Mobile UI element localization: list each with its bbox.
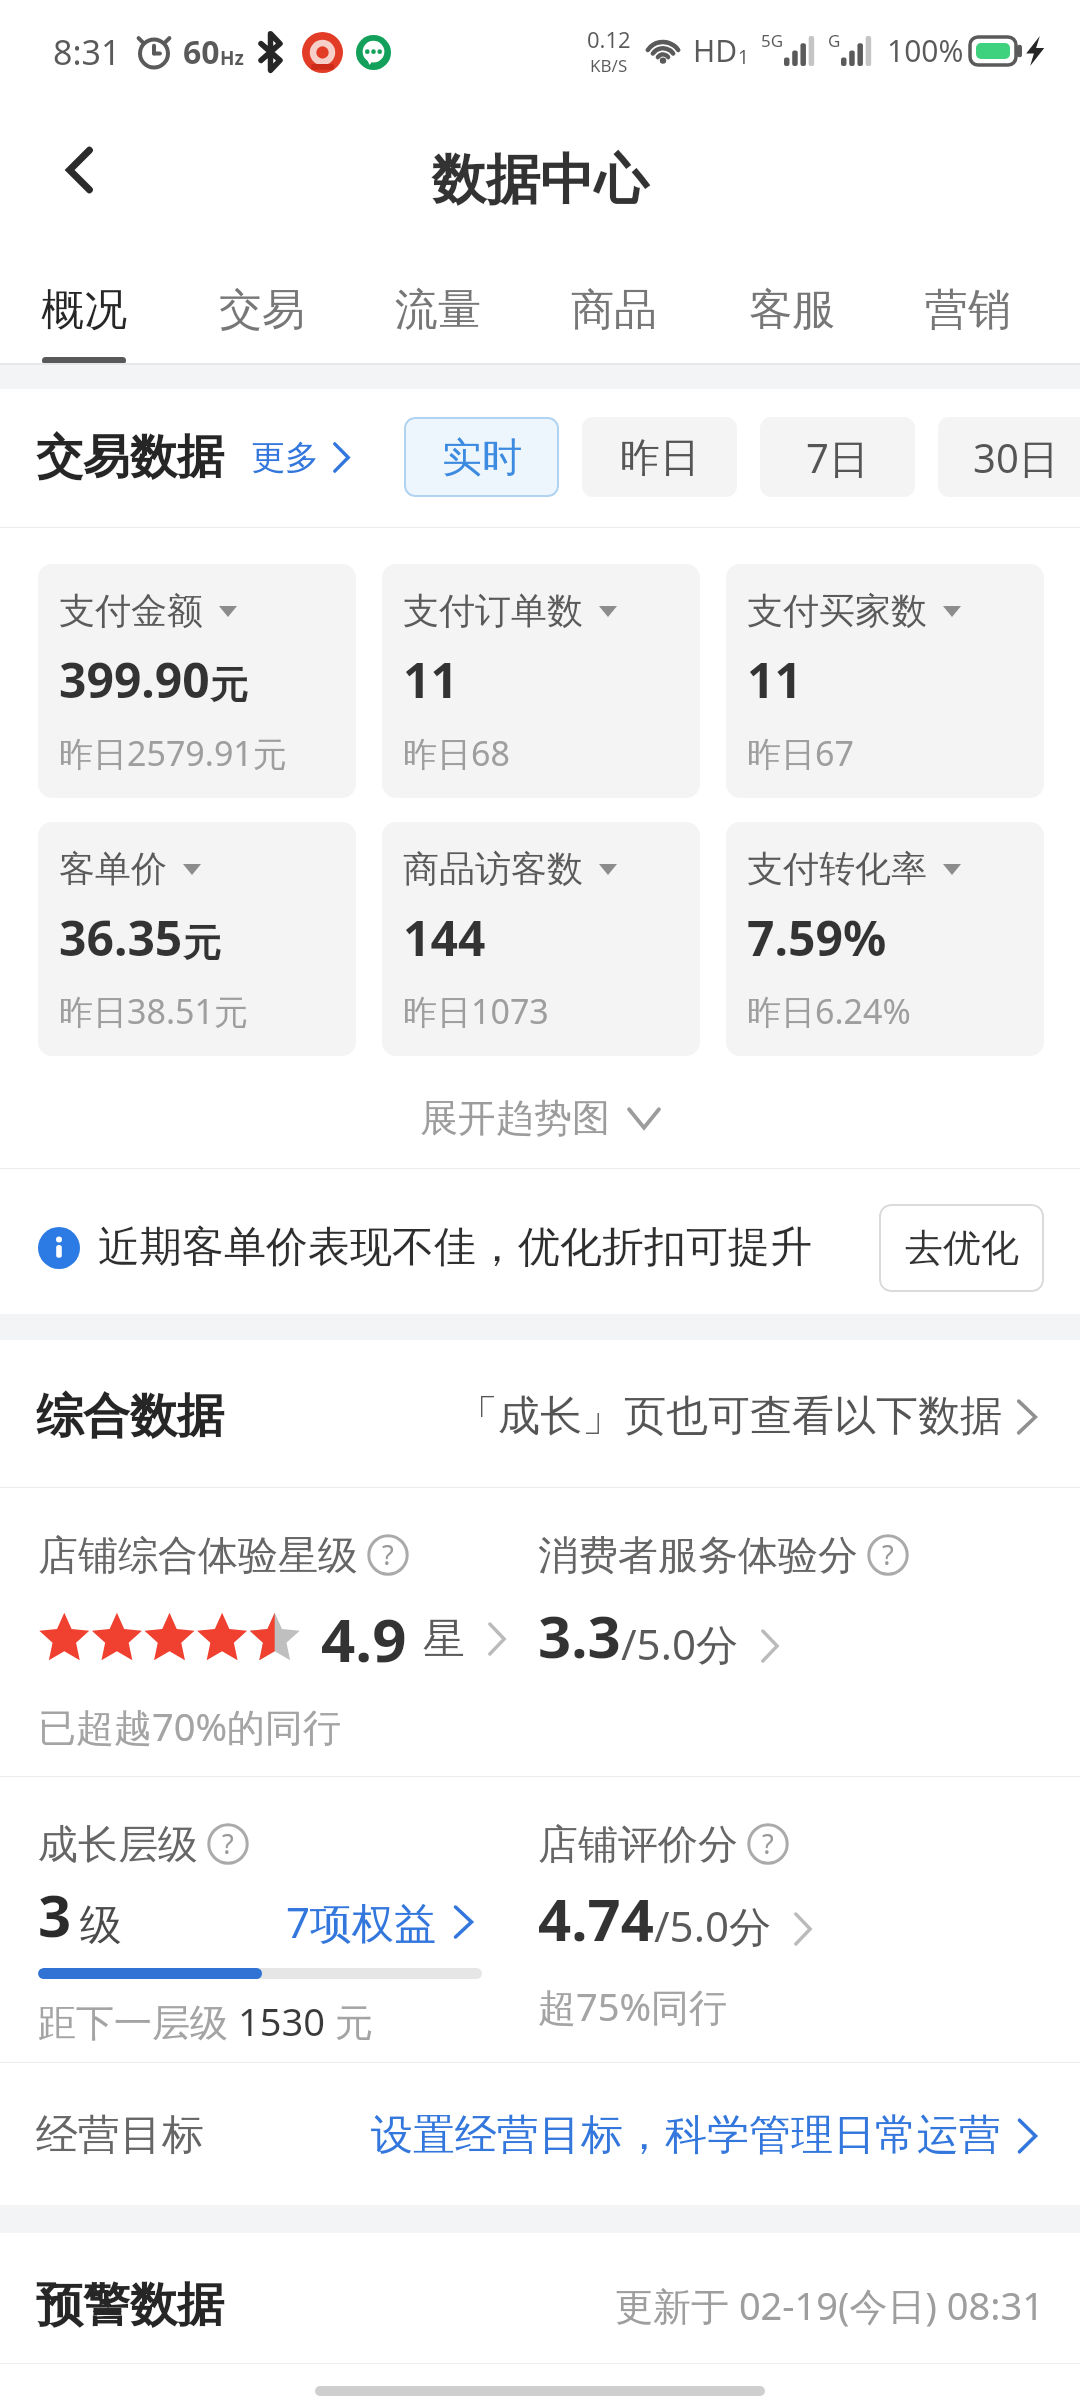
staticText: 星 <box>423 1613 465 1666</box>
staticText: 设置经营目标，科学管理日常运营 <box>371 2109 1001 2162</box>
button[interactable]: 4.74 <box>538 1879 815 1958</box>
staticText: 元 <box>325 1995 373 2047</box>
staticText: 店铺综合体验星级 <box>38 1530 358 1580</box>
staticText: 概况 <box>41 283 127 337</box>
button[interactable]: 昨日 <box>582 417 737 497</box>
staticText: 支付订单数 <box>403 588 583 633</box>
staticText: 1 <box>738 44 749 70</box>
staticText: 级 <box>80 1899 122 1952</box>
staticText: ? <box>882 1536 894 1573</box>
staticText: 经营目标 <box>36 2109 204 2162</box>
button[interactable]: 去优化 <box>879 1204 1044 1292</box>
button[interactable]: 客单价 <box>38 822 356 1056</box>
staticText: 0.12 <box>587 24 631 54</box>
button[interactable]: 客服 <box>704 235 880 363</box>
staticText: 超75%同行 <box>538 1980 728 2032</box>
button[interactable]: 30日 <box>938 417 1080 497</box>
staticText: 更多 <box>251 436 319 479</box>
staticText: 更新于 02-19(今日) 08:31 <box>615 2279 1044 2331</box>
staticText: 4.74 <box>538 1879 654 1958</box>
staticText: 综合数据 <box>36 1387 224 1446</box>
staticText: 消费者服务体验分 <box>538 1530 858 1580</box>
staticText: KB/S <box>590 54 628 77</box>
staticText: 交易 <box>219 283 305 337</box>
button[interactable]: 支付买家数 <box>726 564 1044 798</box>
button[interactable]: 支付金额 <box>38 564 356 798</box>
staticText: 展开趋势图 <box>420 1094 610 1142</box>
staticText: 交易数据 <box>36 428 224 487</box>
staticText: 商品访客数 <box>403 846 583 891</box>
staticText: 7.59 <box>747 905 843 970</box>
staticText: 实时 <box>442 432 522 482</box>
staticText: 预警数据 <box>36 2276 224 2335</box>
staticText: 60 <box>183 30 220 74</box>
staticText: 30日 <box>973 430 1059 485</box>
staticText: 去优化 <box>905 1224 1019 1272</box>
button[interactable]: 概况 <box>0 235 172 363</box>
staticText: 成长层级 <box>38 1819 198 1869</box>
staticText: 11 <box>403 647 458 712</box>
staticText: 5G <box>761 29 784 52</box>
staticText: 昨日1073 <box>403 988 549 1034</box>
staticText: 8:31 <box>53 29 121 75</box>
staticText: 支付买家数 <box>747 588 927 633</box>
staticText: 元 <box>210 661 248 709</box>
staticText: 399.90 <box>59 647 210 712</box>
staticText: 36.35 <box>59 905 183 970</box>
staticText: % <box>843 905 887 970</box>
staticText: 4.9 <box>321 1598 407 1680</box>
button[interactable]: 展开趋势图 <box>0 1068 1080 1168</box>
staticText: 支付转化率 <box>747 846 927 891</box>
staticText: 昨日2579.91元 <box>59 730 287 776</box>
button[interactable]: 3.3 <box>538 1596 782 1675</box>
staticText: 昨日6.24% <box>747 988 911 1034</box>
button[interactable]: Back <box>40 130 120 210</box>
staticText: 近期客单价表现不佳，优化折扣可提升 <box>98 1221 812 1274</box>
staticText: Hz <box>220 45 244 71</box>
button[interactable]: 商品 <box>526 235 702 363</box>
button[interactable]: 7日 <box>760 417 915 497</box>
staticText: 昨日38.51元 <box>59 988 248 1034</box>
staticText: 100% <box>887 30 964 71</box>
button[interactable]: 营销 <box>880 235 1056 363</box>
staticText: 7项权益 <box>286 1893 437 1950</box>
staticText: /5.0分 <box>621 1615 738 1672</box>
staticText: 客单价 <box>59 846 167 891</box>
staticText: HD <box>693 30 738 71</box>
staticText: 元 <box>183 919 221 967</box>
staticText: 3 <box>38 1875 72 1954</box>
button[interactable]: 更多 <box>251 436 352 479</box>
staticText: /5.0分 <box>654 1897 771 1954</box>
staticText: 距下一层级 <box>38 1995 238 2047</box>
staticText: 客服 <box>749 283 835 337</box>
button[interactable]: 商品访客数 <box>382 822 700 1056</box>
staticText: 商品 <box>571 283 657 337</box>
staticText: 7日 <box>806 430 869 485</box>
staticText: 144 <box>403 905 486 970</box>
staticText: 「成长」页也可查看以下数据 <box>456 1390 1002 1443</box>
staticText: 11 <box>747 647 802 712</box>
staticText: 流量 <box>395 283 481 337</box>
button[interactable]: 经营目标 <box>0 2066 1080 2205</box>
button[interactable]: 4.9 <box>38 1598 509 1680</box>
button[interactable]: 支付订单数 <box>382 564 700 798</box>
button[interactable]: 实时 <box>404 417 559 497</box>
staticText: 数据中心 <box>432 146 648 214</box>
staticText: 昨日68 <box>403 730 510 776</box>
staticText: 昨日 <box>620 432 700 482</box>
button[interactable]: 交易 <box>174 235 350 363</box>
staticText: 已超越70%的同行 <box>38 1700 342 1752</box>
button[interactable]: 7项权益 <box>286 1897 476 1954</box>
button[interactable]: 流量 <box>350 235 526 363</box>
staticText: 1530 <box>238 1995 325 2047</box>
button[interactable]: 支付转化率 <box>726 822 1044 1056</box>
staticText: ? <box>382 1536 394 1573</box>
staticText: 3.3 <box>538 1596 621 1675</box>
staticText: 营销 <box>925 283 1011 337</box>
staticText: ? <box>762 1825 774 1862</box>
staticText: 昨日67 <box>747 730 854 776</box>
staticText: 支付金额 <box>59 588 203 633</box>
staticText: ? <box>222 1825 234 1862</box>
staticText: G <box>828 29 841 52</box>
button[interactable]: 「成长」页也可查看以下数据 <box>456 1390 1040 1443</box>
